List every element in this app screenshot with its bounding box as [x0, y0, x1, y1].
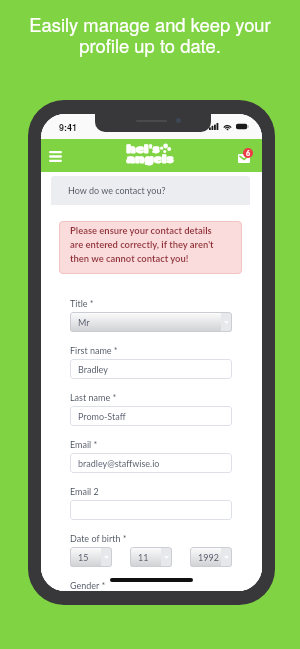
staticText: hel's angels: [126, 142, 174, 165]
button[interactable]: [70, 500, 232, 520]
button[interactable]: bradley@staffwise.io: [70, 453, 232, 473]
staticText: How do we contact you?: [68, 185, 166, 196]
staticText: 9:41: [59, 121, 78, 134]
staticText: Last name *: [70, 392, 117, 403]
staticText: Gender *: [70, 580, 106, 591]
staticText: Email *: [70, 439, 98, 450]
button[interactable]: Mr: [70, 312, 232, 332]
button[interactable]: Messages, 6 unread: [234, 144, 256, 166]
button[interactable]: Bradley: [70, 359, 232, 379]
button[interactable]: 11: [130, 547, 172, 567]
staticText: bradley@staffwise.io: [78, 458, 160, 469]
staticText: First name *: [70, 345, 118, 356]
staticText: 11: [138, 552, 149, 563]
staticText: Promo-Staff: [78, 411, 126, 422]
staticText: Date of birth *: [70, 533, 127, 544]
staticText: Email 2: [70, 486, 99, 497]
button[interactable]: 1992: [190, 547, 232, 567]
staticText: Easily manage and keep your profile up t…: [0, 11, 300, 58]
staticText: Mr: [78, 317, 90, 328]
button[interactable]: Promo-Staff: [70, 406, 232, 426]
staticText: Title *: [70, 298, 94, 309]
button[interactable]: 15: [70, 547, 112, 567]
staticText: 15: [78, 552, 89, 563]
button[interactable]: Open navigation menu: [45, 146, 66, 167]
staticText: Bradley: [78, 364, 108, 375]
staticText: 1992: [198, 552, 219, 563]
staticText: 6: [246, 149, 251, 157]
staticText: Please ensure your contact details are e…: [70, 225, 214, 264]
